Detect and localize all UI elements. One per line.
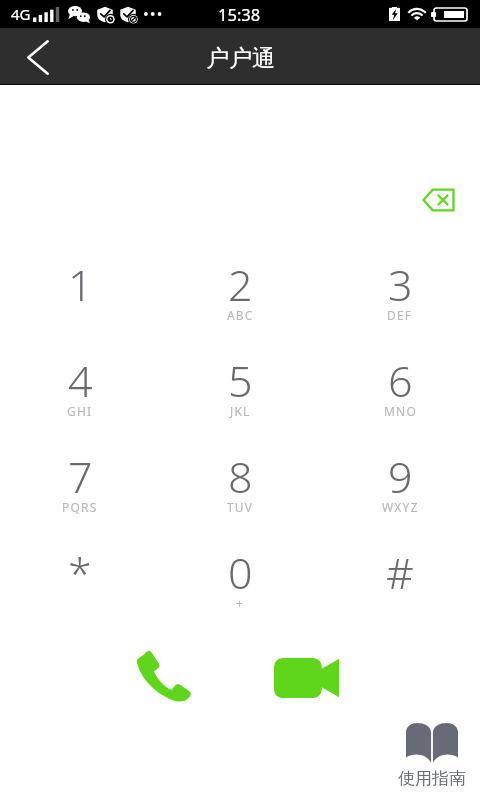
button[interactable]: # — [320, 530, 480, 626]
staticText: 5 — [228, 351, 253, 410]
staticText: 8 — [228, 447, 253, 506]
staticText: 4G — [11, 4, 31, 24]
staticText: 7 — [68, 447, 93, 506]
staticText: JKL — [230, 403, 251, 419]
staticText: 2 — [228, 255, 253, 314]
button[interactable]: Back — [0, 29, 66, 85]
staticText: 9 — [388, 447, 413, 506]
button[interactable]: 8 — [160, 434, 320, 530]
staticText: 15:38 — [218, 3, 261, 25]
staticText: # — [386, 543, 414, 602]
staticText: DEF — [387, 307, 413, 323]
button[interactable]: 9 — [320, 434, 480, 530]
button[interactable]: 5 — [160, 338, 320, 434]
button[interactable]: 2 — [160, 242, 320, 338]
button[interactable]: Video call — [266, 642, 346, 714]
button[interactable]: 1 — [0, 242, 160, 338]
staticText: 6 — [388, 351, 413, 410]
staticText: PQRS — [62, 499, 98, 515]
button[interactable]: Backspace — [410, 172, 466, 228]
button[interactable]: 3 — [320, 242, 480, 338]
staticText: 1 — [68, 255, 93, 314]
staticText: 4 — [68, 351, 93, 410]
staticText: TUV — [227, 499, 254, 515]
staticText: 0 — [228, 543, 253, 602]
staticText: ABC — [227, 307, 254, 323]
staticText: GHI — [67, 403, 93, 419]
button[interactable]: 7 — [0, 434, 160, 530]
button[interactable]: 4 — [0, 338, 160, 434]
button[interactable]: * — [0, 530, 160, 626]
staticText: * — [68, 543, 92, 602]
staticText: WXYZ — [382, 499, 419, 515]
button[interactable]: 使用指南 — [390, 723, 474, 789]
button[interactable]: 0 — [160, 530, 320, 626]
button[interactable]: 6 — [320, 338, 480, 434]
staticText: 使用指南 — [398, 768, 466, 789]
staticText: 3 — [388, 255, 413, 314]
staticText: + — [236, 595, 245, 611]
staticText: 户户通 — [206, 44, 275, 73]
button[interactable]: Call — [123, 635, 203, 715]
staticText: MNO — [384, 403, 417, 419]
